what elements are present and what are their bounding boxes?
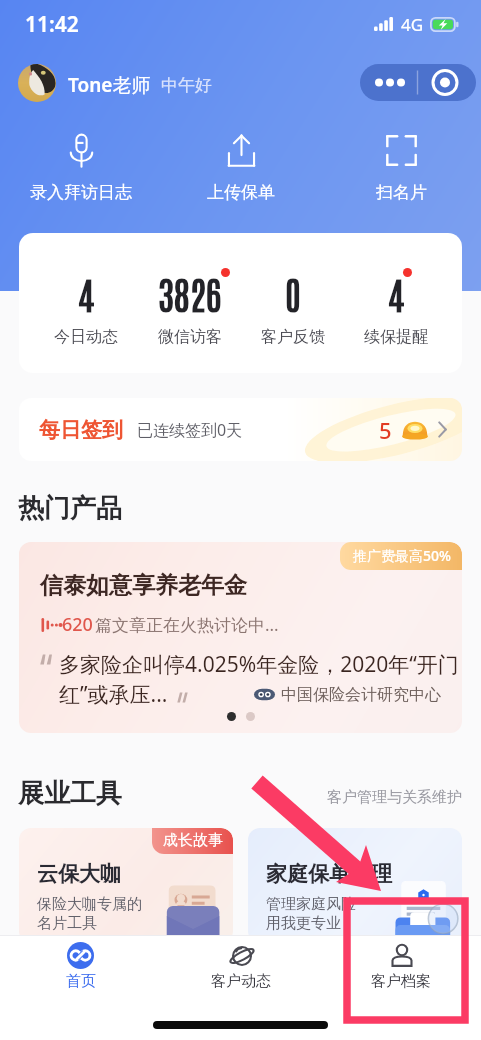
- staticText: 中国保险会计研究中心: [281, 685, 441, 705]
- staticText: 微信访客: [158, 327, 222, 347]
- staticText: Tone老师: [68, 72, 151, 98]
- staticText: 中午好: [161, 75, 212, 96]
- button[interactable]: 每日签到: [19, 398, 462, 461]
- staticText: 0: [285, 268, 301, 317]
- staticText: 首页: [66, 972, 96, 991]
- button[interactable]: 4: [344, 268, 447, 347]
- staticText: 续保提醒: [364, 327, 428, 347]
- staticText: 家庭保单管理: [266, 861, 392, 887]
- button[interactable]: 录入拜访日志: [0, 133, 161, 203]
- button[interactable]: More options: [360, 64, 476, 101]
- staticText: 信泰如意享养老年金: [40, 571, 247, 600]
- staticText: 成长故事: [163, 831, 223, 850]
- staticText: 展业工具: [18, 777, 122, 810]
- button[interactable]: 成长故事: [19, 828, 233, 943]
- button[interactable]: 客户档案: [321, 936, 481, 1000]
- staticText: 管理家庭风险 用我更专业: [266, 895, 356, 933]
- staticText: 已连续签到0天: [137, 419, 243, 441]
- staticText: 热门产品: [18, 492, 122, 525]
- button[interactable]: 3826: [138, 268, 241, 347]
- staticText: 篇文章正在火热讨论中...: [95, 613, 279, 636]
- button[interactable]: 扫名片: [321, 133, 481, 203]
- staticText: 多家险企叫停4.025%年金险，2020年“开门: [59, 650, 459, 679]
- staticText: 客户档案: [371, 972, 431, 991]
- staticText: 4: [388, 268, 404, 317]
- staticText: 录入拜访日志: [30, 182, 132, 203]
- staticText: 4: [78, 268, 94, 317]
- staticText: 推广费最高50%: [353, 546, 451, 565]
- staticText: 客户管理与关系维护: [327, 788, 462, 807]
- staticText: 今日动态: [54, 327, 118, 347]
- staticText: 云保大咖: [37, 861, 121, 887]
- button[interactable]: 首页: [0, 936, 161, 1000]
- staticText: 620: [62, 612, 93, 637]
- button[interactable]: 推广费最高50%: [19, 542, 462, 733]
- staticText: 11:42: [25, 10, 79, 39]
- staticText: 每日签到: [39, 417, 123, 443]
- staticText: 保险大咖专属的 名片工具: [37, 895, 142, 933]
- staticText: 上传保单: [207, 182, 275, 203]
- button[interactable]: 0: [241, 268, 344, 347]
- staticText: 3826: [158, 268, 222, 317]
- staticText: 5: [379, 415, 392, 445]
- button[interactable]: 上传保单: [161, 133, 321, 203]
- staticText: 客户动态: [211, 972, 271, 991]
- staticText: 红”或承压...: [59, 680, 168, 709]
- staticText: 扫名片: [376, 182, 427, 203]
- staticText: 4G: [401, 13, 424, 36]
- button[interactable]: Profile avatar: [18, 64, 56, 102]
- button[interactable]: 客户动态: [161, 936, 321, 1000]
- button[interactable]: 4: [34, 268, 138, 347]
- button[interactable]: 家庭保单管理: [248, 828, 462, 943]
- staticText: 客户反馈: [261, 327, 325, 347]
